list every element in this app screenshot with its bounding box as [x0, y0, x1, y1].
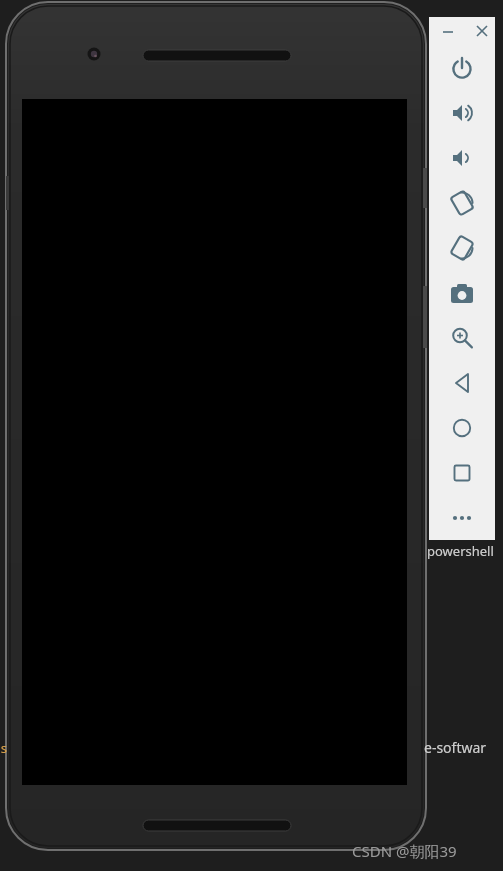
button[interactable]: Power — [429, 45, 495, 90]
staticText: CSDN @朝阳39 — [352, 841, 457, 861]
staticText: e-softwar — [424, 738, 487, 757]
button[interactable]: Take screenshot — [429, 270, 495, 315]
button[interactable]: Rotate right — [429, 225, 495, 270]
button[interactable]: Home — [429, 405, 495, 450]
staticText: s — [0, 739, 8, 757]
button[interactable]: Zoom — [429, 315, 495, 360]
button[interactable]: Volume up — [429, 90, 495, 135]
button[interactable]: Rotate left — [429, 180, 495, 225]
button[interactable]: Back — [429, 360, 495, 405]
button[interactable]: Minimize — [437, 17, 459, 45]
button[interactable]: Overview — [429, 450, 495, 495]
button[interactable]: Close — [471, 17, 493, 45]
button[interactable]: More — [429, 495, 495, 540]
button[interactable]: Volume down — [429, 135, 495, 180]
staticText: powershell — [427, 542, 494, 560]
